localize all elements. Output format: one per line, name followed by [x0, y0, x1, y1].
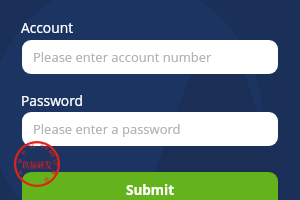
other: Company seal: [14, 141, 60, 187]
staticText: 研: [43, 176, 50, 184]
staticText: Please enter a password: [33, 120, 181, 138]
staticText: 发: [50, 169, 57, 177]
button[interactable]: Please enter a password: [22, 112, 278, 146]
button[interactable]: Submit: [22, 172, 278, 200]
staticText: 玖: [17, 168, 24, 176]
staticText: 福: [16, 158, 23, 164]
staticText: 专: [52, 161, 58, 166]
staticText: 技: [29, 142, 36, 150]
staticText: 有: [39, 142, 46, 150]
staticText: 司: [51, 168, 58, 176]
staticText: 科: [20, 148, 27, 156]
staticText: 玖福研发: [22, 159, 52, 170]
staticText: 限: [48, 148, 55, 156]
staticText: Please enter account number: [33, 48, 212, 66]
staticText: 用: [50, 151, 57, 159]
staticText: 章: [43, 144, 50, 152]
staticText: Submit: [126, 181, 175, 199]
staticText: 公: [52, 158, 59, 164]
staticText: Account: [21, 18, 74, 37]
button[interactable]: Please enter account number: [22, 40, 278, 74]
staticText: Password: [21, 91, 84, 110]
